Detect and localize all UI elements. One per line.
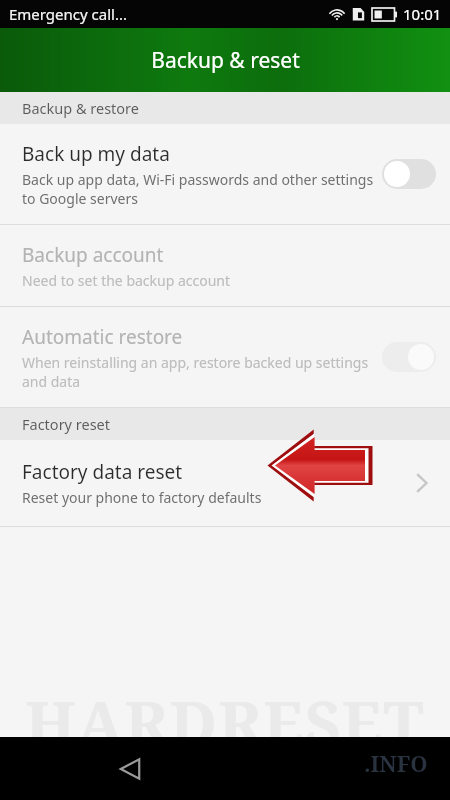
button[interactable]: Factory data reset <box>0 440 450 526</box>
button[interactable]: Back up my data <box>0 124 450 224</box>
staticText: HARDRESET <box>25 680 425 762</box>
staticText: Reset your phone to factory defaults <box>22 488 262 507</box>
staticText: Back up my data <box>22 141 170 167</box>
staticText: Automatic restore <box>22 324 183 350</box>
button[interactable]: Back <box>104 743 156 795</box>
staticText: Factory data reset <box>22 459 183 485</box>
staticText: 10:01 <box>403 4 442 24</box>
staticText: When reinstalling an app, restore backed… <box>22 353 369 391</box>
staticText: Need to set the backup account <box>22 271 231 290</box>
staticText: Factory reset <box>22 414 111 434</box>
staticText: Backup & restore <box>22 98 139 118</box>
staticText: Back up app data, Wi-Fi passwords and ot… <box>22 170 374 208</box>
staticText: Emergency call... <box>9 4 127 24</box>
button[interactable]: Toggle <box>382 159 436 189</box>
staticText: .INFO <box>364 748 428 778</box>
button[interactable]: Backup account <box>0 225 450 306</box>
staticText: Backup & reset <box>151 46 300 75</box>
button[interactable]: Automatic restore <box>0 307 450 407</box>
staticText: Backup account <box>22 242 164 268</box>
button[interactable]: Toggle <box>382 342 436 372</box>
